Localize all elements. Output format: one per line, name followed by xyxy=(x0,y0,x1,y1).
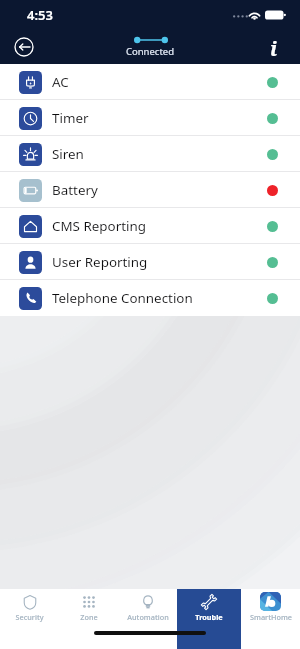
button[interactable]: Timer xyxy=(0,100,300,136)
staticText: Telephone Connection xyxy=(52,289,193,307)
staticText: Security xyxy=(15,612,44,622)
staticText: User Reporting xyxy=(52,253,148,271)
button[interactable]: User Reporting xyxy=(0,244,300,280)
staticText: Automation xyxy=(127,612,169,622)
button[interactable]: Trouble xyxy=(177,589,241,649)
button[interactable]: Security xyxy=(0,589,59,649)
button[interactable]: Back xyxy=(9,32,39,62)
staticText: CMS Reporting xyxy=(52,217,146,235)
staticText: Zone xyxy=(80,612,98,622)
staticText: Battery xyxy=(52,181,98,199)
button[interactable]: Automation xyxy=(118,589,177,649)
staticText: Connected xyxy=(126,45,175,58)
staticText: i xyxy=(270,35,278,59)
staticText: Trouble xyxy=(195,612,223,622)
staticText: AC xyxy=(52,73,69,91)
button[interactable]: Battery xyxy=(0,172,300,208)
button[interactable]: SmartHome xyxy=(241,589,300,649)
staticText: Timer xyxy=(52,109,89,127)
staticText: 4:53 xyxy=(27,6,53,24)
button[interactable]: Zone xyxy=(59,589,118,649)
staticText: SmartHome xyxy=(250,612,292,622)
button[interactable]: CMS Reporting xyxy=(0,208,300,244)
button[interactable]: Info xyxy=(262,35,286,59)
button[interactable]: Telephone Connection xyxy=(0,280,300,316)
button[interactable]: Siren xyxy=(0,136,300,172)
button[interactable]: AC xyxy=(0,64,300,100)
staticText: Siren xyxy=(52,145,84,163)
